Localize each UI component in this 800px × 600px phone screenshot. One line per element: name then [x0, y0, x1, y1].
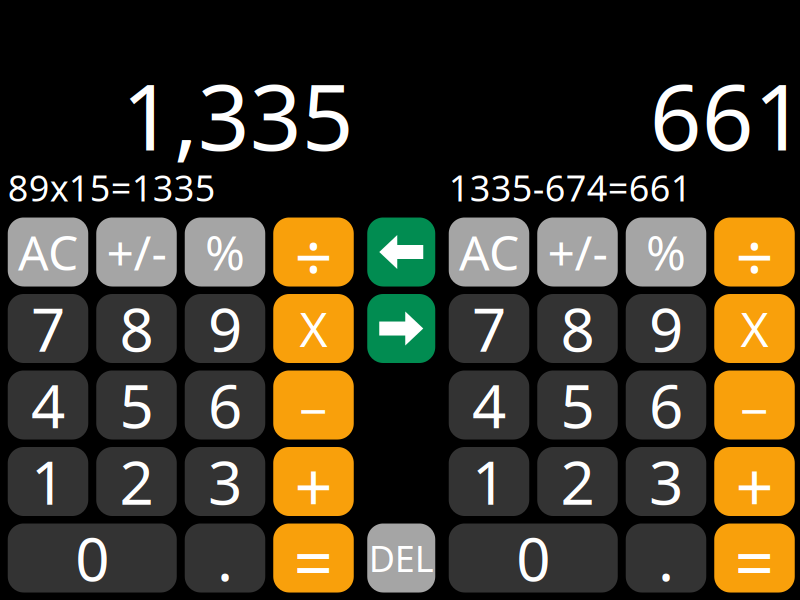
button[interactable]: %	[185, 217, 265, 286]
staticText: %	[646, 220, 686, 284]
button[interactable]: X	[714, 294, 795, 363]
button[interactable]: 5	[96, 370, 177, 439]
staticText: 9	[649, 289, 683, 368]
button[interactable]: %	[626, 217, 706, 286]
button[interactable]: 3	[185, 447, 265, 516]
button[interactable]: 3	[626, 447, 706, 516]
button[interactable]: 0	[8, 523, 177, 592]
staticText: 3	[649, 442, 683, 521]
staticText: 89x15=1335	[8, 164, 216, 211]
button[interactable]: Copy result to right calculator	[367, 294, 435, 363]
button[interactable]: X	[273, 294, 354, 363]
staticText: %	[205, 220, 245, 284]
button[interactable]: 9	[626, 294, 706, 363]
button[interactable]: 7	[8, 294, 88, 363]
button[interactable]: 4	[449, 370, 529, 439]
button[interactable]: 0	[449, 523, 618, 592]
staticText: 2	[560, 442, 594, 521]
button[interactable]: =	[273, 523, 354, 592]
staticText: +/-	[547, 220, 607, 284]
staticText: 4	[31, 365, 65, 445]
staticText: −	[299, 376, 328, 444]
button[interactable]: 6	[626, 370, 706, 439]
button[interactable]: 7	[449, 294, 529, 363]
staticText: 1	[472, 442, 506, 521]
staticText: AC	[18, 220, 78, 284]
staticText: ÷	[294, 212, 332, 300]
button[interactable]: 2	[96, 447, 177, 516]
staticText: 2	[119, 442, 153, 521]
staticText: −	[740, 376, 769, 444]
staticText: +	[294, 442, 332, 531]
staticText: .	[658, 518, 674, 598]
button[interactable]: ÷	[714, 217, 795, 286]
button[interactable]: −	[273, 370, 354, 439]
staticText: 6	[208, 365, 242, 445]
button[interactable]: ÷	[273, 217, 354, 286]
staticText: 6	[649, 365, 683, 445]
staticText: 661	[650, 55, 800, 175]
staticText: =	[734, 515, 774, 600]
staticText: 1	[31, 442, 65, 521]
staticText: 9	[208, 289, 242, 368]
button[interactable]: .	[185, 523, 265, 592]
staticText: AC	[459, 220, 519, 284]
button[interactable]: +/-	[96, 217, 177, 286]
staticText: 7	[472, 289, 506, 368]
button[interactable]: 1	[449, 447, 529, 516]
staticText: 1,335	[122, 55, 354, 175]
button[interactable]: 6	[185, 370, 265, 439]
button[interactable]: 5	[537, 370, 618, 439]
staticText: 8	[560, 289, 594, 368]
button[interactable]: 4	[8, 370, 88, 439]
staticText: X	[740, 297, 768, 360]
button[interactable]: AC	[8, 217, 88, 286]
staticText: DEL	[369, 534, 434, 582]
staticText: 5	[119, 365, 153, 445]
button[interactable]: +	[273, 447, 354, 516]
button[interactable]: 9	[185, 294, 265, 363]
button[interactable]: 8	[537, 294, 618, 363]
staticText: X	[299, 297, 327, 360]
staticText: 5	[560, 365, 594, 445]
staticText: 0	[75, 518, 109, 598]
staticText: .	[217, 518, 233, 598]
button[interactable]: 2	[537, 447, 618, 516]
staticText: =	[293, 515, 333, 600]
button[interactable]: +/-	[537, 217, 618, 286]
button[interactable]: +	[714, 447, 795, 516]
button[interactable]: 1	[8, 447, 88, 516]
button[interactable]: .	[626, 523, 706, 592]
staticText: 3	[208, 442, 242, 521]
button[interactable]: 8	[96, 294, 177, 363]
button[interactable]: DEL	[367, 523, 435, 592]
staticText: 0	[516, 518, 550, 598]
button[interactable]: =	[714, 523, 795, 592]
button[interactable]: Copy result to left calculator	[367, 217, 435, 286]
staticText: 7	[31, 289, 65, 368]
staticText: +	[735, 442, 773, 531]
staticText: 1335-674=661	[449, 164, 692, 211]
button[interactable]: −	[714, 370, 795, 439]
staticText: 4	[472, 365, 506, 445]
staticText: +/-	[106, 220, 166, 284]
staticText: ÷	[735, 212, 773, 300]
staticText: 8	[119, 289, 153, 368]
button[interactable]: AC	[449, 217, 529, 286]
